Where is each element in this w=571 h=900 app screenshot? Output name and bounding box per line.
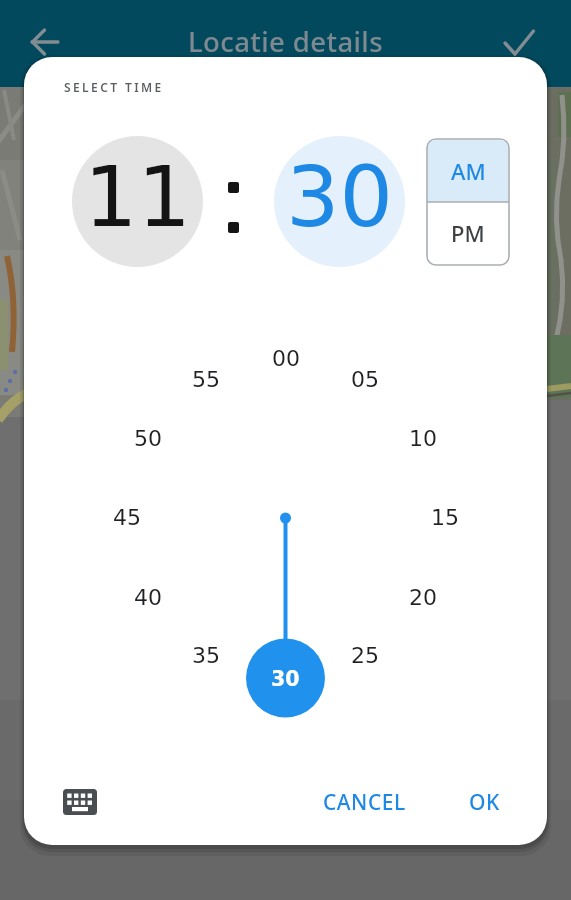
staticText: 55 bbox=[192, 367, 220, 393]
staticText: 20 bbox=[409, 585, 437, 611]
staticText: 25 bbox=[351, 643, 379, 669]
button[interactable]: 30 bbox=[246, 639, 325, 718]
button[interactable]: OK bbox=[449, 779, 519, 825]
staticText: 30 bbox=[286, 148, 393, 246]
staticText: CANCEL bbox=[323, 788, 406, 817]
staticText: 40 bbox=[134, 585, 162, 611]
staticText: 30 bbox=[271, 667, 300, 691]
staticText: 05 bbox=[351, 367, 379, 393]
staticText: AM bbox=[451, 156, 486, 186]
staticText: 50 bbox=[134, 426, 162, 452]
staticText: SELECT TIME bbox=[64, 79, 164, 95]
staticText: 15 bbox=[431, 505, 459, 531]
button[interactable]: CANCEL bbox=[314, 779, 414, 825]
button[interactable]: AM bbox=[428, 140, 508, 202]
staticText: 45 bbox=[113, 505, 141, 531]
button[interactable]: 30 bbox=[274, 136, 405, 267]
staticText: Locatie details bbox=[188, 23, 383, 60]
staticText: 00 bbox=[272, 346, 300, 372]
button[interactable]: PM bbox=[428, 202, 508, 264]
staticText: 11 bbox=[84, 148, 191, 246]
staticText: OK bbox=[469, 788, 500, 817]
staticText: PM bbox=[451, 218, 485, 248]
button[interactable] bbox=[57, 779, 103, 825]
staticText: 35 bbox=[192, 643, 220, 669]
button[interactable]: 11 bbox=[72, 136, 203, 267]
staticText: 10 bbox=[409, 426, 437, 452]
